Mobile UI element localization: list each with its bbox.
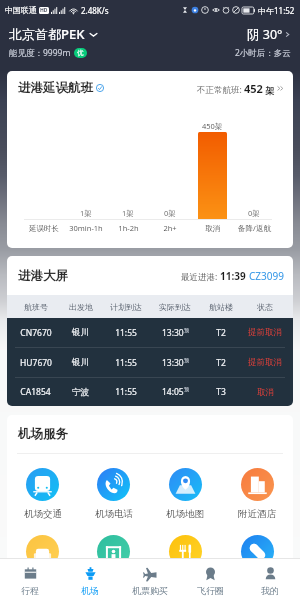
staticText: 航站楼 xyxy=(209,302,233,312)
staticText: T3 xyxy=(216,386,226,398)
staticText: 进港延误航班 xyxy=(18,80,93,96)
other: 机场电话 xyxy=(97,468,130,501)
staticText: 备降/返航 xyxy=(238,223,271,233)
staticText: CA1854 xyxy=(20,386,51,398)
staticText: 预 xyxy=(184,386,189,392)
other: 机场交通 xyxy=(26,468,59,501)
staticText: 航班号 xyxy=(24,302,48,312)
staticText: 能见度：9999m xyxy=(9,47,71,59)
button[interactable]: 北京首都PEK xyxy=(9,25,98,43)
staticText: 13:30 xyxy=(162,357,184,369)
staticText: 最近进港: xyxy=(181,271,220,283)
staticText: 450架 xyxy=(202,121,223,131)
staticText: 延误时长 xyxy=(29,224,59,233)
staticText: 北京首都PEK xyxy=(9,25,85,43)
staticText: 出发地 xyxy=(69,302,93,312)
other: Service xyxy=(26,535,59,568)
button[interactable]: 附近酒店 xyxy=(221,468,293,520)
staticText: 中国联通 xyxy=(5,5,37,15)
button[interactable]: 我的 xyxy=(240,559,300,600)
staticText: 1架 xyxy=(80,208,92,218)
staticText: 2小时后：多云 xyxy=(235,47,291,59)
staticText: 14:05 xyxy=(162,386,184,398)
other: 附近酒店 xyxy=(241,468,274,501)
staticText: 11:55 xyxy=(115,357,137,369)
staticText: 机场地图 xyxy=(166,508,204,520)
staticText: 行程 xyxy=(21,585,39,596)
staticText: 银川 xyxy=(72,327,89,338)
staticText: 11:55 xyxy=(115,386,137,398)
staticText: 宁波 xyxy=(72,387,89,398)
staticText: CN7670 xyxy=(20,327,52,339)
button[interactable]: 飞行圈 xyxy=(180,559,240,600)
other: Service xyxy=(97,535,130,568)
staticText: 中午11:52 xyxy=(258,5,295,16)
other: 机场地图 xyxy=(169,468,202,501)
staticText: 机场服务 xyxy=(18,426,68,442)
staticText: 13:30 xyxy=(162,327,184,339)
staticText: 11:39 xyxy=(220,269,246,283)
staticText: 机场 xyxy=(81,585,99,596)
staticText: 不正常航班: xyxy=(197,84,244,96)
staticText: 预 xyxy=(184,327,189,333)
staticText: 0架 xyxy=(164,208,176,218)
staticText: 提前取消 xyxy=(248,327,282,338)
button[interactable]: HU7670 xyxy=(11,348,289,377)
staticText: 30min-1h xyxy=(69,223,103,233)
staticText: CZ3099 xyxy=(249,269,284,283)
button[interactable]: 进港大屏 xyxy=(18,256,284,295)
staticText: 阴 30° xyxy=(247,26,283,43)
staticText: 取消 xyxy=(257,387,274,398)
staticText: 预 xyxy=(184,357,189,363)
staticText: T2 xyxy=(216,357,226,369)
staticText: 附近酒店 xyxy=(238,508,276,520)
staticText: 2.48K/s xyxy=(81,5,109,16)
staticText: 机场电话 xyxy=(95,508,133,520)
other: Service xyxy=(241,535,274,568)
staticText: 架 xyxy=(263,84,275,96)
staticText: HU7670 xyxy=(20,357,52,369)
staticText: 0架 xyxy=(248,208,260,218)
button[interactable]: 机场交通 xyxy=(7,468,78,520)
staticText: 状态 xyxy=(257,302,273,312)
button[interactable]: CA1854 xyxy=(11,378,289,406)
button[interactable]: Service xyxy=(149,535,221,568)
staticText: 1h-2h xyxy=(118,223,139,233)
staticText: T2 xyxy=(216,327,226,339)
staticText: 飞行圈 xyxy=(197,585,224,596)
staticText: 提前取消 xyxy=(248,357,282,368)
button[interactable]: 机场地图 xyxy=(149,468,221,520)
staticText: 优 xyxy=(77,49,84,57)
other: Info xyxy=(96,84,104,92)
button[interactable]: 进港延误航班 xyxy=(18,71,284,105)
button[interactable]: Service xyxy=(221,535,293,568)
other: Change airport xyxy=(89,30,98,39)
staticText: 实际到达 xyxy=(159,302,191,312)
button[interactable]: 机场 xyxy=(60,559,120,600)
staticText: 11:55 xyxy=(115,327,137,339)
button[interactable]: 机场电话 xyxy=(78,468,149,520)
staticText: 银川 xyxy=(72,357,89,368)
button[interactable]: 阴 30° xyxy=(235,26,291,59)
button[interactable]: CN7670 xyxy=(11,318,289,347)
staticText: HD xyxy=(40,7,48,14)
staticText: 2h+ xyxy=(163,223,177,233)
staticText: 取消 xyxy=(205,224,220,233)
staticText: 计划到达 xyxy=(110,302,142,312)
staticText: 我的 xyxy=(261,585,279,596)
button[interactable]: 机票购买 xyxy=(120,559,180,600)
button[interactable]: 行程 xyxy=(0,559,60,600)
staticText: 1架 xyxy=(122,208,134,218)
button[interactable]: Service xyxy=(78,535,149,568)
staticText: 机场交通 xyxy=(24,508,62,520)
other: Service xyxy=(169,535,202,568)
staticText: 进港大屏 xyxy=(18,268,68,284)
staticText: 机票购买 xyxy=(132,585,168,596)
button[interactable]: Service xyxy=(7,535,78,568)
staticText: 452 xyxy=(244,81,263,96)
